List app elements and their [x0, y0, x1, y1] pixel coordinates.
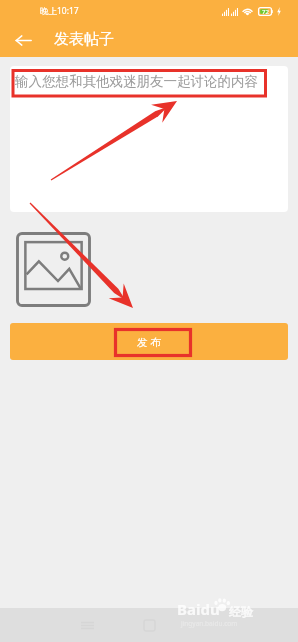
staticText: 晚上10:17 — [40, 5, 79, 17]
staticText: Baidu — [177, 599, 220, 619]
button[interactable]: Add image — [16, 232, 91, 307]
button[interactable]: 发 布 — [10, 323, 288, 360]
staticText: 72 — [262, 8, 269, 16]
staticText: 发表帖子 — [54, 30, 114, 49]
staticText: 发 布 — [137, 335, 161, 349]
staticText: 输入您想和其他戏迷朋友一起讨论的内容 — [15, 73, 258, 90]
staticText: jingyan.baidu.com — [181, 619, 238, 628]
staticText: 经验 — [229, 604, 253, 619]
button[interactable]: Back — [12, 29, 34, 51]
button[interactable]: 输入您想和其他戏迷朋友一起讨论的内容 — [10, 66, 288, 212]
